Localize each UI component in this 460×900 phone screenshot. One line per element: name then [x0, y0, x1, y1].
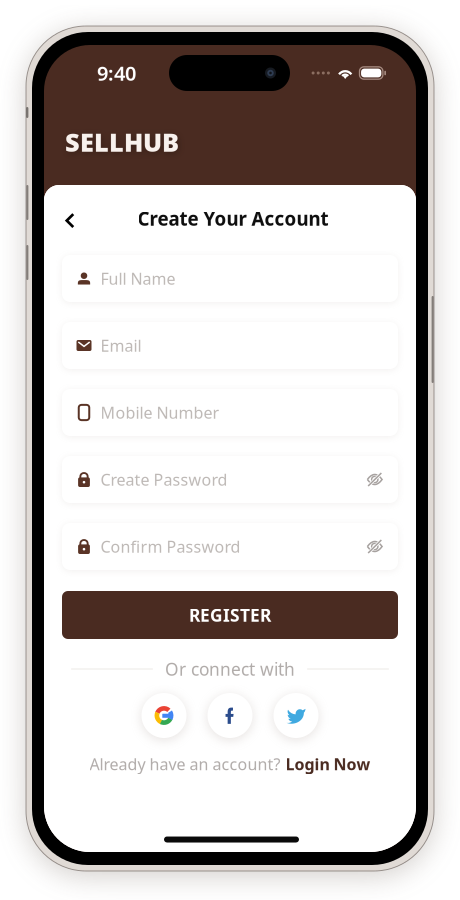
- staticText: Login Now: [285, 753, 370, 775]
- button[interactable]: Full Name: [62, 255, 398, 302]
- staticText: Create Your Account: [137, 206, 328, 231]
- staticText: Full Name: [100, 268, 175, 289]
- button[interactable]: Confirm Password: [62, 523, 398, 570]
- staticText: SELLHUB: [65, 125, 179, 159]
- staticText: Mobile Number: [100, 402, 219, 423]
- staticText: Email: [100, 335, 141, 356]
- button[interactable]: Sign up with Google: [141, 693, 186, 738]
- button[interactable]: Sign up with Facebook: [207, 693, 252, 738]
- button[interactable]: Create Password: [62, 456, 398, 503]
- button[interactable]: Email: [62, 322, 398, 369]
- button[interactable]: REGISTER: [62, 591, 398, 639]
- staticText: Already have an account?: [89, 753, 280, 775]
- button[interactable]: Sign up with Twitter: [273, 693, 318, 738]
- button[interactable]: Mobile Number: [62, 389, 398, 436]
- staticText: Create Password: [100, 469, 227, 490]
- button[interactable]: Back: [54, 205, 86, 237]
- staticText: REGISTER: [189, 603, 271, 626]
- staticText: Confirm Password: [100, 536, 240, 557]
- staticText: Or connect with: [165, 657, 295, 680]
- button[interactable]: Already have an account?: [62, 753, 398, 775]
- staticText: 9:40: [97, 60, 136, 86]
